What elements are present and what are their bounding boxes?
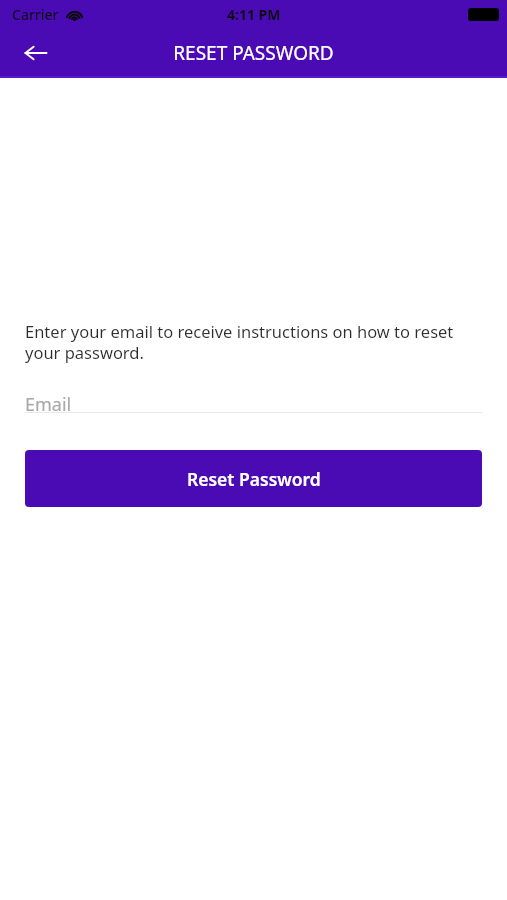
staticText: Reset Password (187, 467, 321, 491)
button[interactable]: Back (14, 31, 58, 75)
button[interactable]: Reset Password (25, 450, 482, 507)
staticText: 4:11 PM (227, 5, 281, 24)
button[interactable]: Email (25, 364, 482, 430)
staticText: Carrier (12, 5, 59, 24)
staticText: RESET PASSWORD (173, 40, 334, 66)
staticText: Email (25, 392, 72, 417)
staticText: Enter your email to receive instructions… (25, 320, 482, 364)
